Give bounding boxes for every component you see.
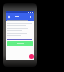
button[interactable]: More options [28, 15, 32, 19]
button[interactable]: Navigate up [7, 15, 11, 19]
button[interactable] [7, 41, 33, 46]
button[interactable]: Add [29, 54, 34, 59]
